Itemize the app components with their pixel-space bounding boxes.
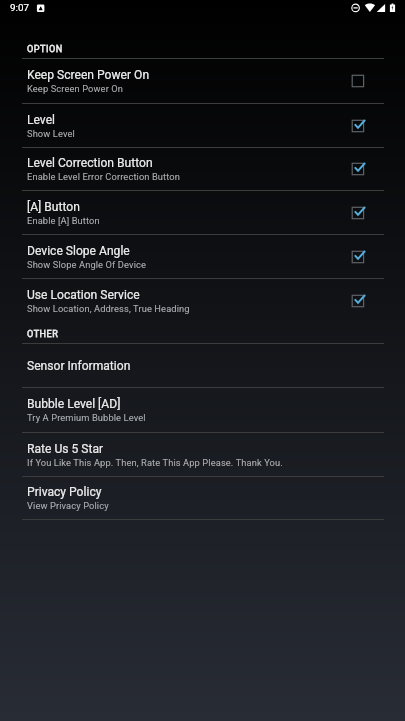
- button[interactable]: Device Slope Angle, checked: [350, 247, 370, 267]
- button[interactable]: [A] Button, checked: [350, 203, 370, 223]
- button[interactable]: Use Location Service: [0, 279, 405, 322]
- staticText: Use Location Service: [27, 288, 140, 302]
- staticText: Show Level: [27, 128, 75, 139]
- staticText: [A] Button: [27, 200, 80, 214]
- staticText: Privacy Policy: [27, 485, 102, 499]
- button[interactable]: Device Slope Angle: [0, 235, 405, 278]
- staticText: OTHER: [27, 329, 59, 340]
- button[interactable]: Level Correction Button, checked: [350, 159, 370, 179]
- staticText: Level Correction Button: [27, 156, 153, 170]
- staticText: Enable [A] Button: [27, 215, 100, 226]
- staticText: Device Slope Angle: [27, 244, 130, 258]
- button[interactable]: Level Correction Button: [0, 148, 405, 190]
- staticText: Try A Premium Bubble Level: [27, 412, 146, 423]
- staticText: Level: [27, 113, 55, 127]
- button[interactable]: Bubble Level [AD]: [0, 388, 405, 432]
- staticText: Keep Screen Power On: [27, 68, 150, 82]
- staticText: If You Like This App. Then, Rate This Ap…: [27, 457, 283, 468]
- staticText: 9:07: [10, 2, 29, 13]
- button[interactable]: Level: [0, 104, 405, 147]
- staticText: Enable Level Error Correction Button: [27, 171, 180, 182]
- button[interactable]: Keep Screen Power On, not checked: [350, 71, 370, 91]
- staticText: Rate Us 5 Star: [27, 442, 104, 456]
- staticText: Show Location, Address, True Heading: [27, 303, 190, 314]
- staticText: Bubble Level [AD]: [27, 397, 121, 411]
- button[interactable]: Sensor Information: [0, 344, 405, 387]
- button[interactable]: Level, checked: [350, 116, 370, 136]
- button[interactable]: Rate Us 5 Star: [0, 433, 405, 476]
- button[interactable]: Use Location Service, checked: [350, 291, 370, 311]
- button[interactable]: Keep Screen Power On: [0, 59, 405, 103]
- staticText: Keep Screen Power On: [27, 83, 124, 94]
- button[interactable]: Privacy Policy: [0, 477, 405, 519]
- staticText: Show Slope Angle Of Device: [27, 259, 147, 270]
- button[interactable]: [A] Button: [0, 191, 405, 234]
- staticText: OPTION: [27, 44, 63, 55]
- staticText: View Privacy Policy: [27, 500, 109, 511]
- staticText: Sensor Information: [27, 359, 131, 373]
